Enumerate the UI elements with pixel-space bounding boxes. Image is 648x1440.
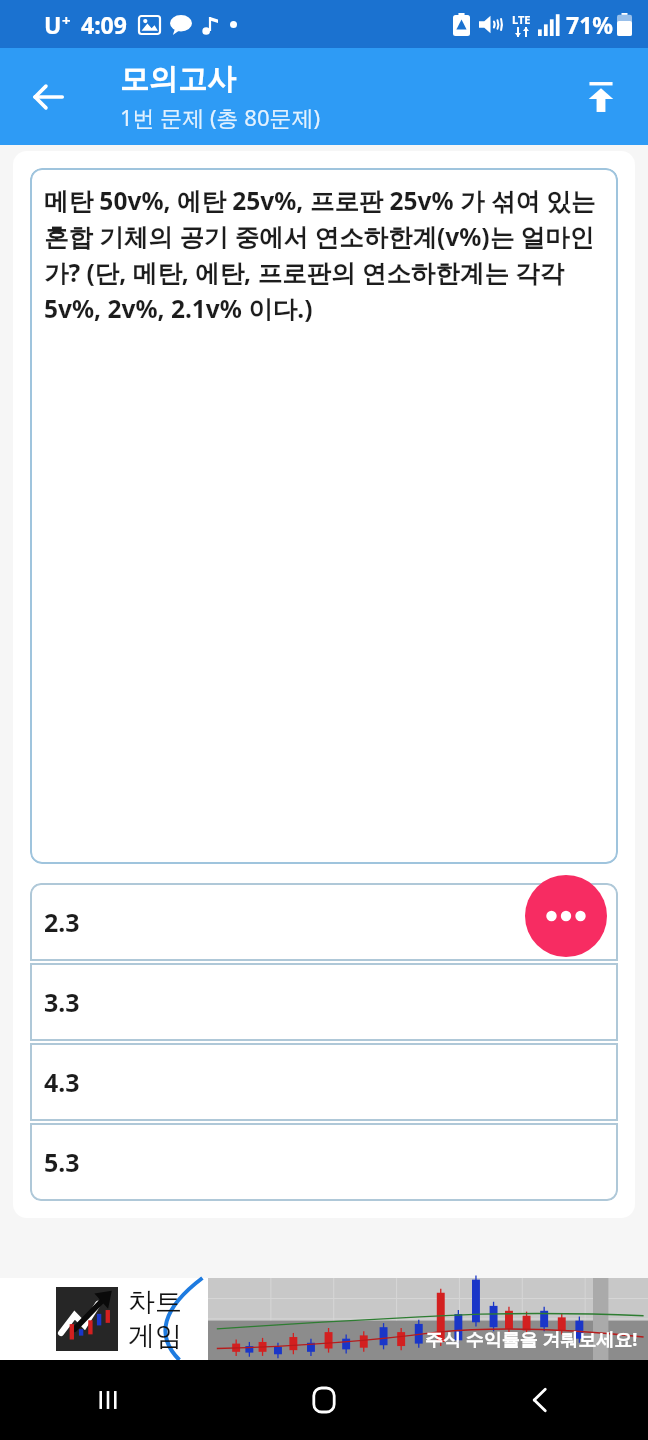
- staticText: 1번 문제 (총 80문제): [120, 102, 321, 132]
- button[interactable]: 5.3: [30, 1123, 618, 1201]
- button[interactable]: Advertisement: 차트게임: [0, 1278, 648, 1360]
- staticText: 메탄 50v%, 에탄 25v%, 프로판 25v% 가 섞여 있는 혼합 기체…: [44, 184, 606, 326]
- staticText: 모의고사: [120, 61, 236, 98]
- button[interactable]: Back: [432, 1360, 648, 1440]
- button[interactable]: Back: [14, 63, 82, 131]
- staticText: 2.3: [44, 905, 80, 939]
- staticText: 4.3: [44, 1065, 80, 1099]
- staticText: 차트: [128, 1285, 182, 1319]
- staticText: 4:09: [81, 9, 127, 40]
- staticText: U: [44, 9, 62, 40]
- button[interactable]: Home: [216, 1360, 432, 1440]
- button[interactable]: More options: [525, 875, 607, 957]
- staticText: 게임: [128, 1319, 182, 1353]
- button[interactable]: Submit: [568, 64, 634, 130]
- staticText: LTE: [512, 12, 531, 27]
- staticText: 주식 수익률을 겨뤄보세요!: [425, 1327, 638, 1352]
- staticText: 71%: [566, 9, 614, 40]
- button[interactable]: Recents: [0, 1360, 216, 1440]
- staticText: 5.3: [44, 1145, 80, 1179]
- staticText: +: [62, 10, 71, 30]
- button[interactable]: 4.3: [30, 1043, 618, 1121]
- button[interactable]: 2.3: [30, 883, 618, 961]
- button[interactable]: 3.3: [30, 963, 618, 1041]
- staticText: 3.3: [44, 985, 80, 1019]
